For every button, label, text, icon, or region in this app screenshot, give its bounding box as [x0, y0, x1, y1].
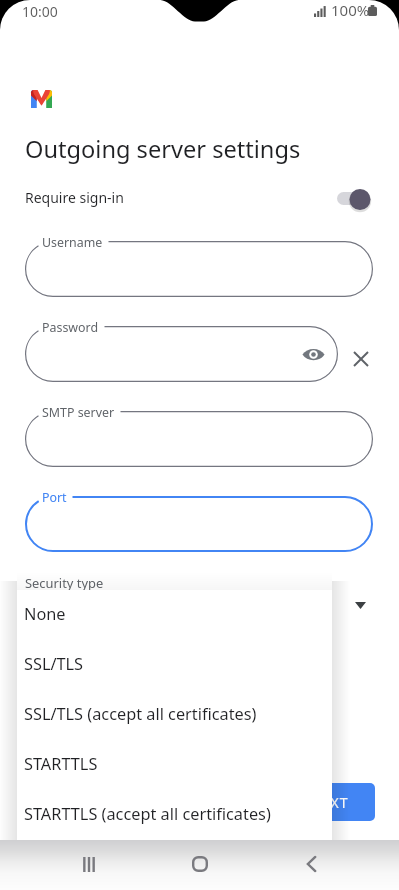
- button[interactable]: SSL/TLS (accept all certificates): [17, 690, 332, 740]
- staticText: SMTP server: [42, 404, 115, 421]
- button[interactable]: None: [17, 590, 332, 640]
- button[interactable]: Back: [277, 840, 345, 890]
- button[interactable]: Home: [166, 840, 234, 890]
- button[interactable]: Password: [25, 326, 338, 382]
- button[interactable]: Clear: [343, 341, 379, 377]
- button[interactable]: Recents: [55, 840, 123, 890]
- button[interactable]: STARTTLS: [17, 740, 332, 790]
- staticText: 100%: [331, 0, 370, 20]
- staticText: 10:00: [22, 2, 58, 21]
- button[interactable]: SMTP server: [25, 411, 373, 467]
- staticText: SSL/TLS (accept all certificates): [24, 703, 257, 725]
- staticText: STARTTLS: [24, 753, 98, 775]
- staticText: Port: [42, 489, 67, 506]
- staticText: Outgoing server settings: [25, 133, 301, 165]
- staticText: STARTTLS (accept all certificates): [24, 803, 271, 825]
- button[interactable]: Expand security type: [344, 589, 376, 621]
- staticText: NEXT: [310, 793, 349, 812]
- button[interactable]: Username: [25, 241, 373, 297]
- staticText: Require sign-in: [25, 188, 124, 207]
- button[interactable]: NEXT: [283, 783, 375, 821]
- button[interactable]: Require sign-in: [330, 180, 378, 218]
- staticText: Password: [42, 319, 99, 336]
- button[interactable]: Port: [25, 496, 373, 552]
- staticText: None: [24, 603, 66, 625]
- button[interactable]: STARTTLS (accept all certificates): [17, 790, 332, 840]
- staticText: SSL/TLS: [24, 653, 84, 675]
- button[interactable]: SSL/TLS: [17, 640, 332, 690]
- button[interactable]: Show password: [295, 336, 331, 372]
- staticText: Username: [42, 234, 103, 251]
- staticText: Security type: [25, 574, 104, 592]
